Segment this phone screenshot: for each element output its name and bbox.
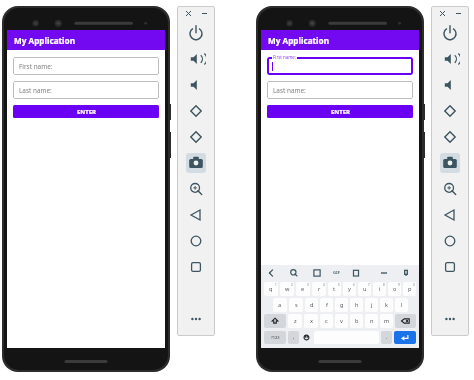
button[interactable]: Enter	[394, 331, 416, 344]
staticText: c	[325, 317, 328, 325]
staticText: e	[301, 285, 305, 293]
button[interactable]: d	[305, 298, 318, 312]
button[interactable]: Back	[440, 205, 460, 225]
button[interactable]: Stickers	[311, 267, 323, 279]
button[interactable]: .	[381, 331, 392, 344]
button[interactable]: Shift	[264, 314, 286, 328]
button[interactable]: Minimize	[453, 8, 463, 18]
button[interactable]: Overview	[440, 257, 460, 277]
button[interactable]: Last name:	[13, 81, 159, 99]
button[interactable]: Rotate right	[440, 127, 460, 147]
staticText: b	[355, 317, 359, 325]
button[interactable]: Power	[186, 23, 206, 43]
staticText: ENTER	[331, 108, 350, 116]
button[interactable]: Volume up	[440, 49, 460, 69]
button[interactable]: Volume up	[186, 49, 206, 69]
button[interactable]: More options	[378, 267, 390, 279]
staticText: i	[379, 285, 381, 293]
staticText: 8	[383, 283, 385, 287]
button[interactable]: t	[328, 282, 341, 296]
button[interactable]: h	[350, 298, 363, 312]
button[interactable]: Backspace	[395, 314, 416, 328]
staticText: First name:	[273, 54, 296, 60]
button[interactable]: Close	[437, 8, 447, 18]
button[interactable]: k	[380, 298, 393, 312]
button[interactable]: j	[365, 298, 378, 312]
button[interactable]: n	[365, 314, 378, 328]
button[interactable]: ,	[288, 331, 299, 344]
button[interactable]: My Application	[261, 30, 419, 50]
button[interactable]: x	[304, 314, 318, 328]
button[interactable]: p	[403, 282, 416, 296]
button[interactable]: l	[395, 298, 408, 312]
button[interactable]: Zoom	[186, 179, 206, 199]
staticText: p	[408, 285, 412, 293]
staticText: y	[348, 285, 351, 293]
button[interactable]: Zoom	[440, 179, 460, 199]
staticText: u	[363, 285, 367, 293]
button[interactable]: Overview	[186, 257, 206, 277]
staticText: First name:	[19, 62, 53, 71]
staticText: 7	[368, 283, 370, 287]
button[interactable]: s	[289, 298, 303, 312]
button[interactable]: Clipboard	[350, 267, 362, 279]
staticText: z	[294, 317, 297, 325]
button[interactable]: u	[358, 282, 371, 296]
button[interactable]: My Application	[7, 30, 165, 50]
staticText: l	[401, 301, 403, 309]
staticText: .	[386, 334, 388, 341]
button[interactable]: ENTER	[267, 105, 413, 118]
button[interactable]: Voice input	[400, 267, 412, 279]
staticText: 6	[353, 283, 355, 287]
button[interactable]: g	[335, 298, 348, 312]
button[interactable]: Rotate right	[186, 127, 206, 147]
button[interactable]: e	[296, 282, 310, 296]
staticText: Last name:	[273, 86, 306, 95]
button[interactable]: a	[273, 298, 287, 312]
button[interactable]: m	[380, 314, 393, 328]
staticText: 1	[275, 283, 277, 287]
button[interactable]: b	[350, 314, 363, 328]
button[interactable]: Close	[183, 8, 193, 18]
button[interactable]: GIF	[333, 270, 340, 276]
button[interactable]: Last name:	[267, 81, 413, 99]
staticText: w	[285, 285, 290, 293]
button[interactable]: i	[373, 282, 386, 296]
staticText: 9	[398, 283, 400, 287]
staticText: ENTER	[77, 108, 96, 116]
button[interactable]: z	[288, 314, 302, 328]
button[interactable]: Screenshot	[186, 153, 206, 173]
button[interactable]: f	[320, 298, 333, 312]
button[interactable]: ?123	[264, 331, 286, 344]
button[interactable]: Volume down	[440, 75, 460, 95]
staticText: Last name:	[19, 86, 52, 95]
button[interactable]: Screenshot	[440, 153, 460, 173]
button[interactable]: w	[280, 282, 294, 296]
button[interactable]: Home	[440, 231, 460, 251]
button[interactable]: Rotate left	[440, 101, 460, 121]
button[interactable]: c	[320, 314, 333, 328]
button[interactable]: q	[264, 282, 278, 296]
button[interactable]	[267, 57, 413, 75]
button[interactable]: More	[186, 309, 206, 329]
button[interactable]: Power	[440, 23, 460, 43]
button[interactable]: ENTER	[13, 105, 159, 118]
button[interactable]: y	[343, 282, 356, 296]
button[interactable]: r	[312, 282, 326, 296]
button[interactable]: Minimize	[199, 8, 209, 18]
button[interactable]: Back	[265, 267, 277, 279]
button[interactable]: Back	[186, 205, 206, 225]
staticText: ?123	[271, 335, 280, 340]
button[interactable]: o	[388, 282, 401, 296]
button[interactable]: More	[440, 309, 460, 329]
button[interactable]: Search	[288, 267, 300, 279]
staticText: n	[370, 317, 374, 325]
button[interactable]: Rotate left	[186, 101, 206, 121]
button[interactable]: Volume down	[186, 75, 206, 95]
button[interactable]: Home	[186, 231, 206, 251]
button[interactable]: First name:	[13, 57, 159, 75]
button[interactable]: v	[335, 314, 348, 328]
staticText: r	[318, 285, 321, 293]
button[interactable]: Emoji	[301, 331, 312, 344]
